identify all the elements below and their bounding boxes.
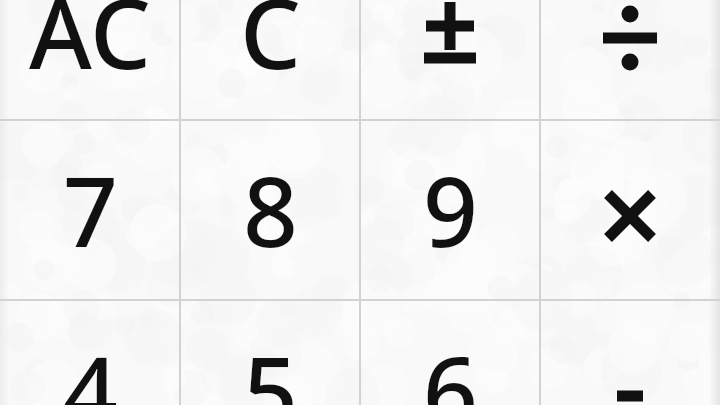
- button[interactable]: Four: [0, 300, 180, 405]
- staticText: 9: [423, 144, 478, 275]
- button[interactable]: Subtract: [540, 300, 720, 405]
- button[interactable]: Eight: [180, 120, 360, 300]
- staticText: 8: [243, 144, 298, 275]
- button[interactable]: Nine: [360, 120, 540, 300]
- staticText: 4: [63, 324, 118, 405]
- staticText: C: [240, 0, 301, 97]
- button[interactable]: Plus minus sign: [360, 0, 540, 120]
- staticText: 5: [243, 324, 298, 405]
- button[interactable]: Multiply: [540, 120, 720, 300]
- button[interactable]: Divide: [540, 0, 720, 120]
- staticText: 7: [63, 144, 118, 275]
- staticText: AC: [29, 0, 151, 97]
- button[interactable]: Five: [180, 300, 360, 405]
- button[interactable]: Clear: [180, 0, 360, 120]
- button[interactable]: Seven: [0, 120, 180, 300]
- staticText: 6: [423, 324, 478, 405]
- button[interactable]: Six: [360, 300, 540, 405]
- button[interactable]: All clear: [0, 0, 180, 120]
